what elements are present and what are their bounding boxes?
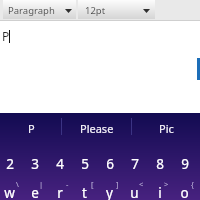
- staticText: -: [66, 179, 69, 189]
- staticText: 6: [106, 155, 114, 173]
- staticText: r: [57, 184, 63, 200]
- button[interactable]: P: [0, 113, 62, 140]
- staticText: 3: [31, 155, 39, 173]
- staticText: |: [39, 179, 44, 189]
- button[interactable]: Please: [62, 113, 132, 140]
- staticText: e: [31, 184, 39, 200]
- button[interactable]: 12pt: [78, 0, 155, 19]
- staticText: Paragraph: [8, 4, 55, 17]
- staticText: {: [191, 179, 194, 189]
- staticText: 5: [81, 155, 89, 173]
- staticText: P: [28, 121, 35, 136]
- staticText: t: [82, 184, 87, 200]
- button[interactable]: 4: [47, 144, 72, 176]
- staticText: i: [158, 184, 162, 200]
- staticText: \: [16, 179, 19, 189]
- staticText: [: [91, 179, 94, 189]
- staticText: Please: [80, 121, 114, 136]
- button[interactable]: t: [72, 173, 97, 200]
- staticText: ]: [116, 179, 119, 189]
- button[interactable]: Paragraph: [3, 0, 76, 19]
- staticText: 7: [131, 155, 139, 173]
- button[interactable]: 3: [22, 144, 47, 176]
- staticText: w: [4, 184, 15, 200]
- staticText: 12pt: [85, 4, 106, 17]
- staticText: 4: [56, 155, 64, 173]
- button[interactable]: y: [97, 173, 122, 200]
- button[interactable]: 8: [147, 144, 172, 176]
- staticText: Pic: [159, 121, 174, 136]
- staticText: P: [2, 28, 10, 44]
- button[interactable]: u: [122, 173, 147, 200]
- button[interactable]: 7: [122, 144, 147, 176]
- button[interactable]: 5: [72, 144, 97, 176]
- staticText: u: [130, 184, 139, 200]
- button[interactable]: e: [22, 173, 47, 200]
- staticText: <: [139, 179, 144, 189]
- button[interactable]: r: [47, 173, 72, 200]
- button[interactable]: o: [172, 173, 197, 200]
- button[interactable]: w: [0, 173, 22, 200]
- button[interactable]: 6: [97, 144, 122, 176]
- button[interactable]: 2: [0, 144, 22, 176]
- button[interactable]: 9: [172, 144, 197, 176]
- button[interactable]: i: [147, 173, 172, 200]
- staticText: 2: [6, 155, 14, 173]
- staticText: 9: [181, 155, 189, 173]
- staticText: >: [164, 179, 169, 189]
- staticText: o: [180, 184, 189, 200]
- staticText: 8: [156, 155, 164, 173]
- staticText: y: [106, 184, 113, 200]
- button[interactable]: Pic: [132, 113, 200, 140]
